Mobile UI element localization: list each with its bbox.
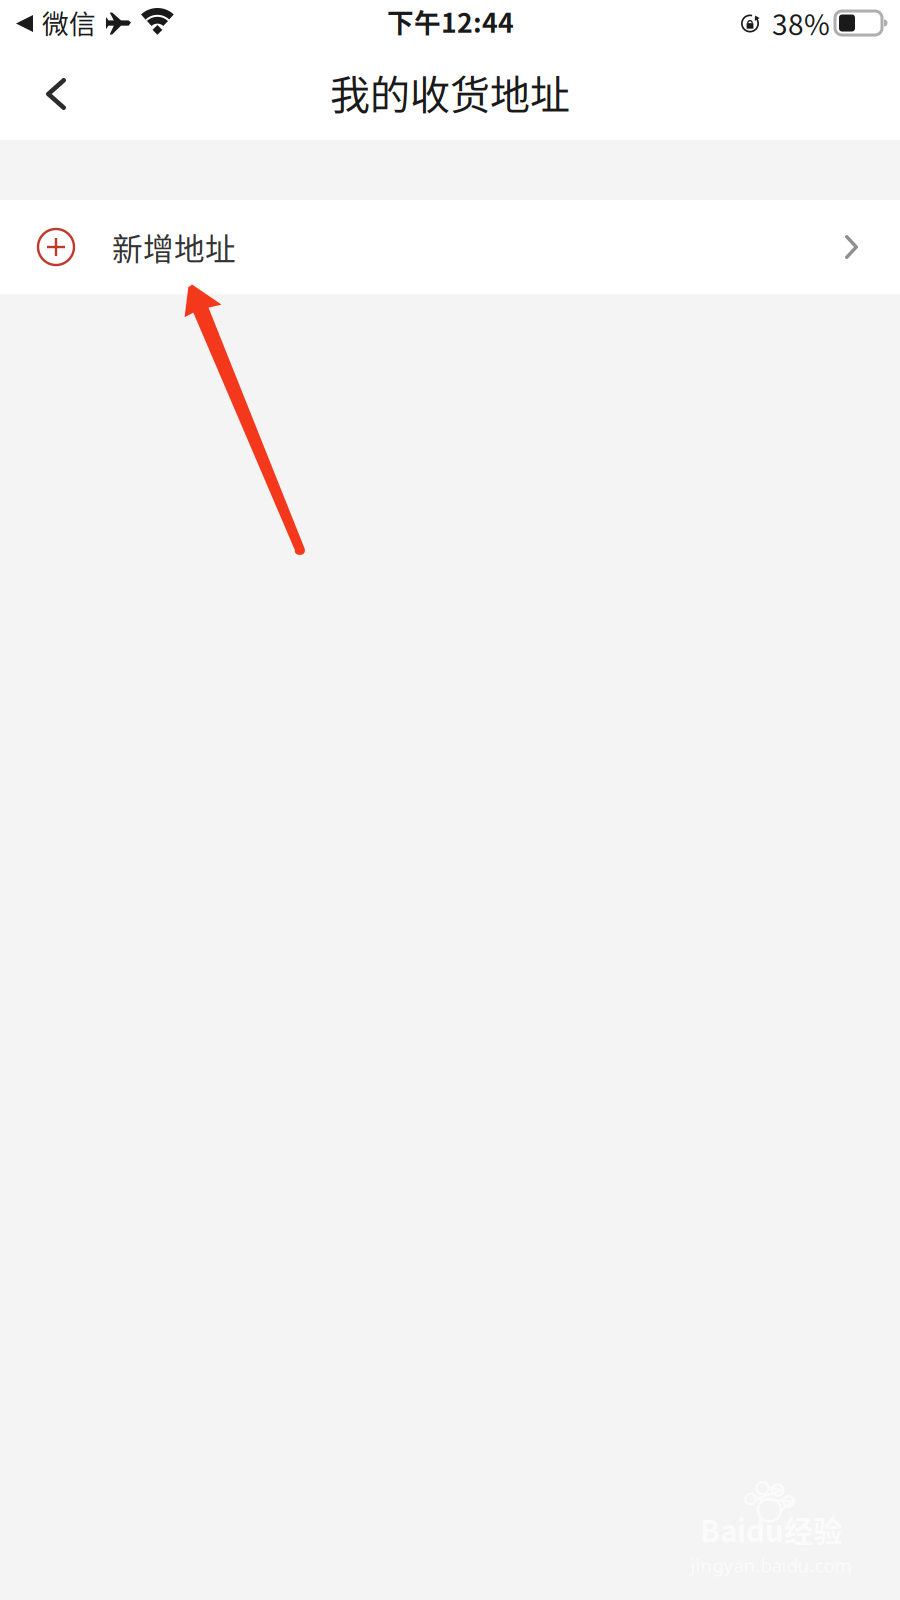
staticText: 38% <box>772 3 830 43</box>
button[interactable]: 返回 <box>0 48 112 140</box>
staticText: 下午12:44 <box>387 2 514 40</box>
staticText: 我的收货地址 <box>330 63 570 121</box>
button[interactable]: 新增地址 <box>0 200 900 294</box>
staticText: 微信 <box>42 3 96 41</box>
staticText: 新增地址 <box>112 225 236 269</box>
